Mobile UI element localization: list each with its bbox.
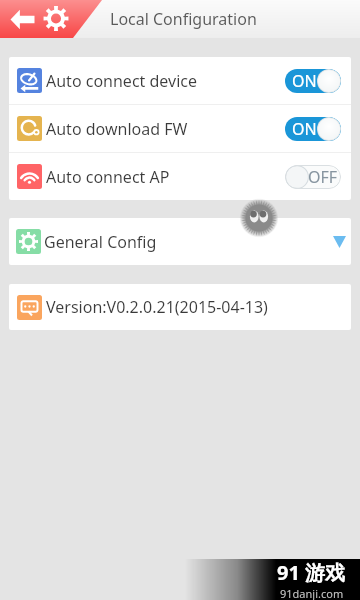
button[interactable]: Auto download FW	[9, 105, 351, 152]
staticText: OFF	[308, 166, 338, 188]
button[interactable]: Toggle off	[285, 165, 341, 189]
staticText: Local Configuration	[110, 8, 257, 30]
button[interactable]: General Config	[9, 218, 351, 265]
staticText: General Config	[44, 231, 157, 253]
button[interactable]: Version:V0.2.0.21(2015-04-13)	[9, 284, 351, 330]
button[interactable]: Auto connect device	[9, 57, 351, 104]
staticText: ON	[292, 70, 317, 92]
button[interactable]: Toggle on	[285, 69, 341, 93]
button[interactable]: Expand	[327, 230, 351, 254]
button[interactable]: Toggle on	[285, 117, 341, 141]
staticText: Auto connect device	[46, 70, 198, 92]
staticText: 91danji.com	[280, 586, 344, 600]
staticText: Version:V0.2.0.21(2015-04-13)	[46, 296, 268, 318]
button[interactable]: Auto connect AP	[9, 153, 351, 200]
staticText: ON	[292, 118, 317, 140]
button[interactable]: Back	[0, 0, 102, 38]
staticText: Auto connect AP	[46, 166, 170, 188]
staticText: Auto download FW	[46, 118, 188, 140]
staticText: 91 游戏	[277, 559, 346, 586]
